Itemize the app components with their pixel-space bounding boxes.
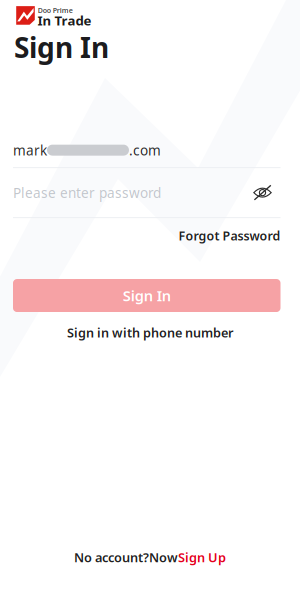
staticText: Sign In: [123, 285, 171, 305]
staticText: .com: [129, 141, 161, 159]
staticText: mark: [13, 141, 47, 159]
button[interactable]: Sign Up: [178, 549, 226, 566]
button[interactable]: Sign in with phone number: [0, 324, 300, 341]
button[interactable]: Forgot Password: [178, 227, 280, 244]
staticText: Sign In: [14, 28, 109, 66]
staticText: Sign in with phone number: [67, 324, 233, 341]
button[interactable]: Show password: [253, 184, 280, 201]
staticText: Forgot Password: [178, 227, 280, 244]
staticText: No account?Now: [74, 549, 178, 566]
staticText: Sign Up: [178, 549, 226, 566]
button[interactable]: Sign In: [13, 279, 280, 312]
staticText: Please enter password: [13, 183, 161, 202]
staticText: In Trade: [37, 11, 91, 29]
staticText: Doo Prime: [38, 5, 73, 15]
